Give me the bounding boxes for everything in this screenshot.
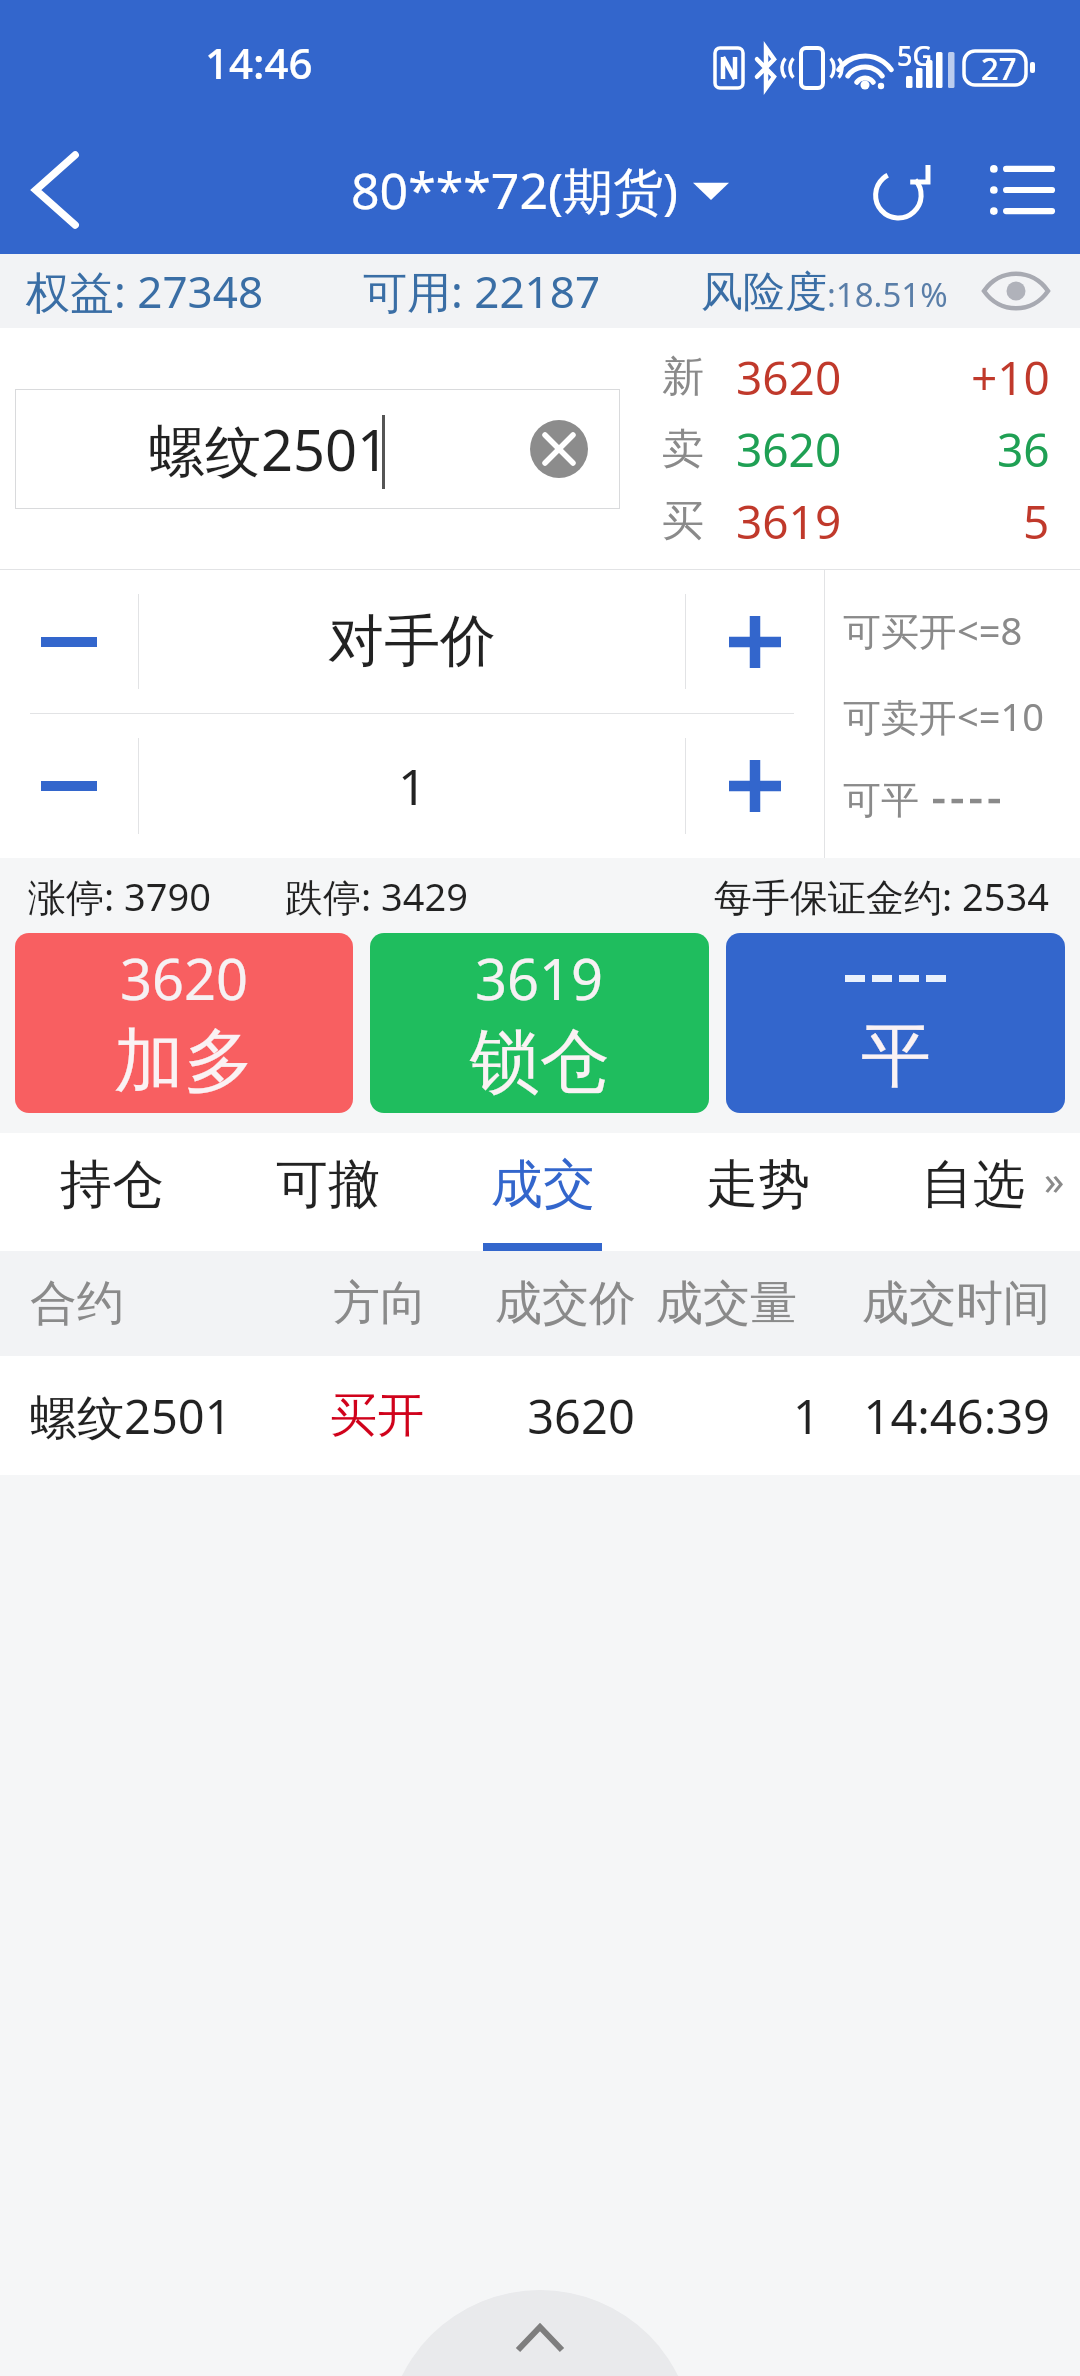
staticText: 5: [1023, 490, 1050, 553]
button[interactable]: 3620: [15, 933, 353, 1113]
staticText: 每手保证金约: 2534: [714, 870, 1050, 922]
button[interactable]: 成交: [435, 1133, 650, 1251]
staticText: 跌停: 3429: [285, 870, 469, 922]
staticText: 3620: [736, 346, 842, 409]
button[interactable]: Clear: [530, 420, 588, 478]
staticText: 36: [997, 418, 1050, 481]
staticText: 成交时间: [833, 1274, 1050, 1333]
staticText: 合约: [30, 1274, 333, 1333]
button[interactable]: Increase: [686, 570, 824, 713]
button[interactable]: More tabs: [1030, 1152, 1078, 1200]
staticText: 成交: [491, 1152, 595, 1218]
button[interactable]: 螺纹2501: [15, 389, 620, 509]
staticText: 成交量: [656, 1274, 833, 1333]
button[interactable]: 自选: [865, 1133, 1080, 1251]
button[interactable]: 走势: [650, 1133, 865, 1251]
staticText: »: [1044, 1152, 1065, 1200]
staticText: 涨停: 3790: [28, 870, 212, 922]
staticText: 买: [662, 495, 704, 548]
staticText: +10: [971, 346, 1050, 409]
staticText: 1: [670, 1384, 820, 1448]
staticText: 27: [981, 47, 1017, 89]
staticText: 可用: 22187: [363, 261, 601, 321]
button[interactable]: Increase: [686, 714, 824, 858]
staticText: 螺纹2501: [30, 1384, 330, 1448]
staticText: 14:46: [205, 34, 313, 91]
staticText: 锁仓: [470, 1018, 610, 1106]
staticText: 权益: 27348: [26, 261, 264, 321]
button[interactable]: Decrease: [0, 714, 138, 858]
staticText: 持仓: [60, 1152, 164, 1218]
staticText: 买开: [330, 1386, 492, 1445]
button[interactable]: Refresh: [844, 131, 962, 249]
staticText: 走势: [706, 1152, 810, 1218]
staticText: 成交价: [495, 1274, 656, 1333]
staticText: 3620: [736, 418, 842, 481]
staticText: 3619: [475, 940, 604, 1016]
button[interactable]: 3619: [370, 933, 709, 1113]
button[interactable]: 80***72(期货): [351, 156, 729, 224]
staticText: 5G: [897, 37, 933, 74]
button[interactable]: 螺纹2501: [0, 1356, 1080, 1475]
staticText: 3619: [736, 490, 842, 553]
staticText: 方向: [333, 1274, 495, 1333]
staticText: 1: [398, 752, 427, 820]
staticText: :18.51%: [827, 272, 948, 317]
button[interactable]: 平: [726, 933, 1065, 1113]
staticText: 可买开<=8: [843, 604, 1023, 656]
button[interactable]: Decrease: [0, 570, 138, 713]
staticText: 卖: [662, 423, 704, 476]
staticText: 3620: [492, 1384, 670, 1448]
staticText: 3620: [120, 940, 249, 1016]
staticText: 对手价: [328, 606, 496, 677]
staticText: 14:46:39: [820, 1384, 1050, 1448]
button[interactable]: Back: [0, 135, 110, 245]
button[interactable]: Toggle visibility: [974, 254, 1058, 328]
staticText: 螺纹2501: [149, 411, 390, 487]
staticText: 平: [861, 1012, 931, 1100]
button[interactable]: 持仓: [4, 1133, 220, 1251]
staticText: 新: [662, 351, 704, 404]
staticText: 加多: [114, 1018, 254, 1106]
button[interactable]: 可撤: [220, 1133, 435, 1251]
staticText: 80***72(期货): [351, 156, 679, 224]
staticText: 可平: [843, 776, 919, 824]
button[interactable]: Menu: [962, 131, 1080, 249]
staticText: 可卖开<=10: [843, 690, 1044, 742]
staticText: 风险度: [701, 266, 827, 319]
staticText: 可撤: [276, 1152, 380, 1218]
staticText: 自选: [921, 1152, 1025, 1218]
